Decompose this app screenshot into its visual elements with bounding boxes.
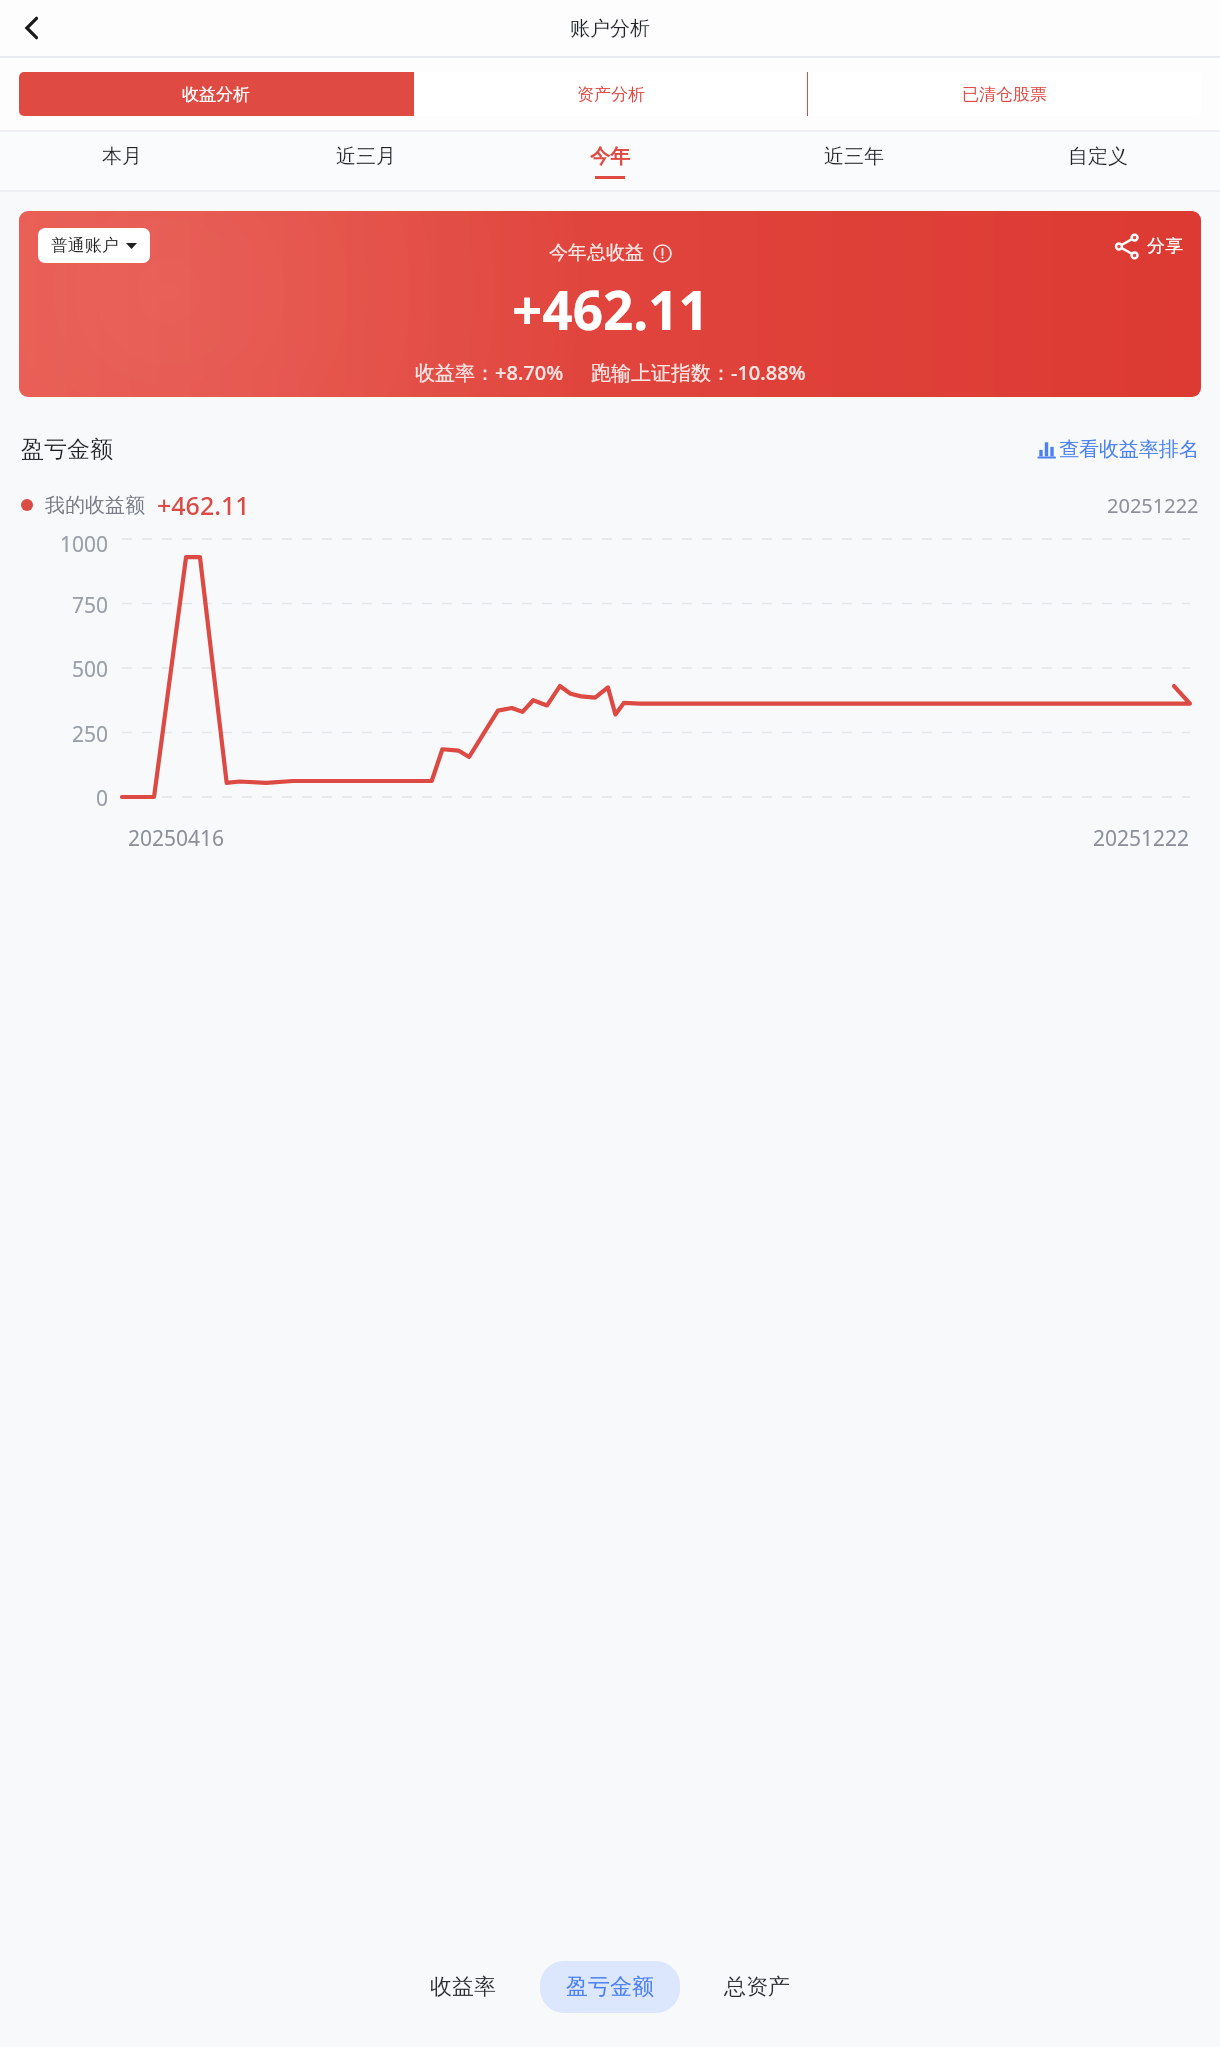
staticText: 我的收益额 <box>45 493 145 518</box>
button[interactable]: Back <box>10 5 56 51</box>
button[interactable]: 总资产 <box>714 1961 800 2013</box>
staticText: +462.11 <box>157 488 250 522</box>
staticText: 普通账户 <box>51 235 119 256</box>
staticText: 近三月 <box>336 144 396 169</box>
button[interactable]: 资产分析 <box>414 72 807 116</box>
staticText: 收益率 <box>430 1973 496 2001</box>
button[interactable]: 收益分析 <box>19 72 413 116</box>
button[interactable]: 自定义 <box>976 132 1220 190</box>
staticText: 分享 <box>1147 235 1183 258</box>
button[interactable]: 普通账户 <box>19 211 1201 397</box>
button[interactable]: 近三年 <box>732 132 976 190</box>
staticText: 1000 <box>0 530 108 559</box>
staticText: 总资产 <box>724 1973 790 2001</box>
staticText: 收益分析 <box>182 84 250 105</box>
staticText: 账户分析 <box>570 16 650 41</box>
staticText: 250 <box>0 720 108 749</box>
button[interactable]: 已清仓股票 <box>808 72 1201 116</box>
staticText: 20250416 <box>128 824 225 853</box>
button[interactable]: 本月 <box>0 132 244 190</box>
button[interactable]: 查看收益率排名 <box>1037 437 1199 462</box>
staticText: 已清仓股票 <box>962 84 1047 105</box>
staticText: 20251222 <box>1107 492 1199 519</box>
staticText: 查看收益率排名 <box>1059 437 1199 462</box>
button[interactable]: 今年 <box>488 132 732 190</box>
staticText: 今年总收益 <box>549 241 644 265</box>
staticText: 近三年 <box>824 144 884 169</box>
staticText: 跑输上证指数：-10.88% <box>591 359 806 386</box>
staticText: 0 <box>0 784 108 813</box>
staticText: 资产分析 <box>577 84 645 105</box>
staticText: 盈亏金额 <box>566 1973 654 2001</box>
staticText: 20251222 <box>1093 824 1190 853</box>
button[interactable]: Share <box>1113 233 1183 260</box>
staticText: 收益率：+8.70% <box>415 359 564 386</box>
staticText: 盈亏金额 <box>21 435 113 464</box>
staticText: 750 <box>0 591 108 620</box>
staticText: 本月 <box>102 144 142 169</box>
button[interactable]: 盈亏金额 <box>540 1961 680 2013</box>
button[interactable]: 收益率 <box>420 1961 506 2013</box>
button[interactable]: 近三月 <box>244 132 488 190</box>
staticText: +462.11 <box>512 273 709 345</box>
staticText: 自定义 <box>1068 144 1128 169</box>
staticText: 500 <box>0 655 108 684</box>
button[interactable]: 普通账户 <box>38 228 150 263</box>
staticText: 今年 <box>590 144 630 169</box>
